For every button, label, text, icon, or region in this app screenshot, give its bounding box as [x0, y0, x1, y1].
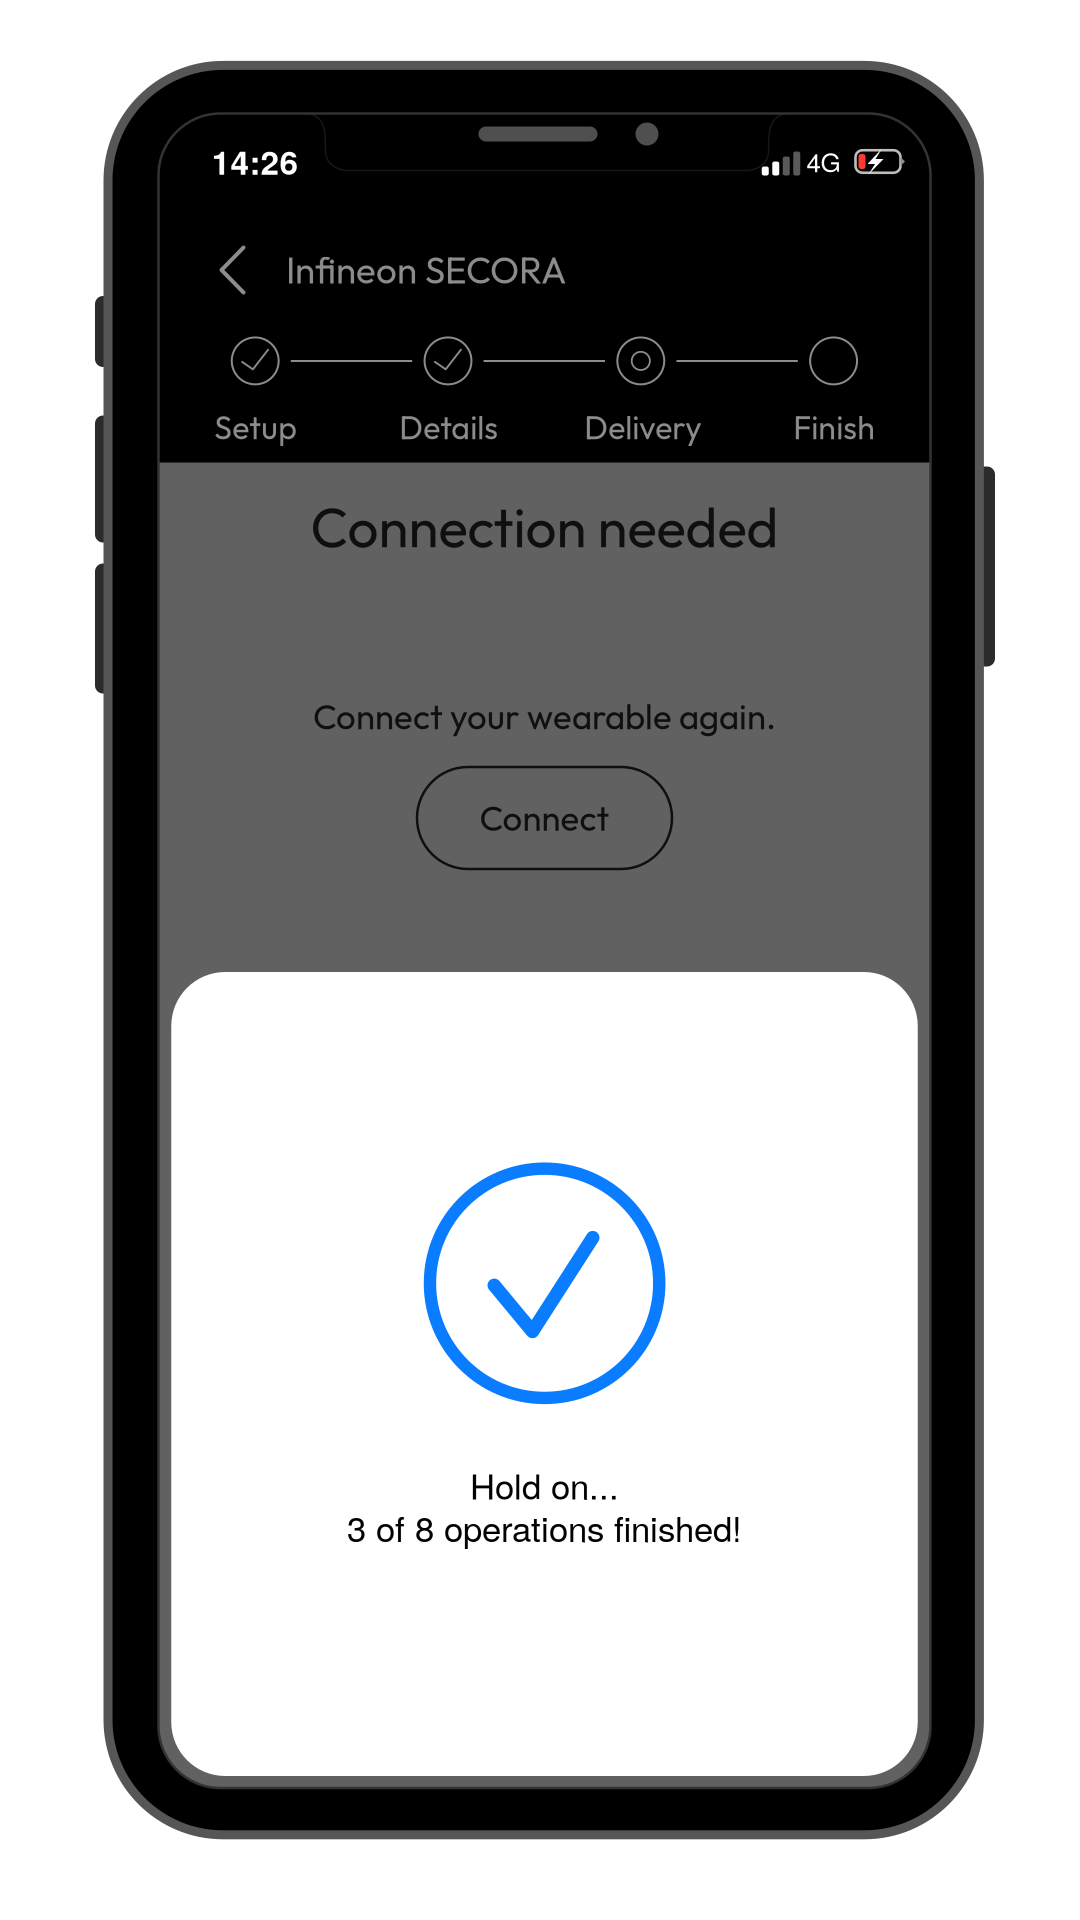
- staticText: Setup: [214, 407, 297, 448]
- staticText: Hold on...: [470, 1460, 619, 1509]
- button[interactable]: Connect: [417, 767, 672, 869]
- staticText: Delivery: [584, 407, 701, 448]
- staticText: 3 of 8 operations finished!: [347, 1502, 742, 1552]
- staticText: Details: [399, 407, 498, 448]
- staticText: Connection needed: [310, 493, 778, 561]
- staticText: Connect: [479, 796, 609, 840]
- staticText: 4G: [806, 142, 840, 180]
- staticText: 14:26: [211, 137, 298, 185]
- staticText: Connect your wearable again.: [313, 695, 776, 738]
- button[interactable]: Back: [191, 229, 273, 311]
- staticText: Infineon SECORA: [286, 247, 567, 293]
- staticText: Finish: [793, 407, 875, 448]
